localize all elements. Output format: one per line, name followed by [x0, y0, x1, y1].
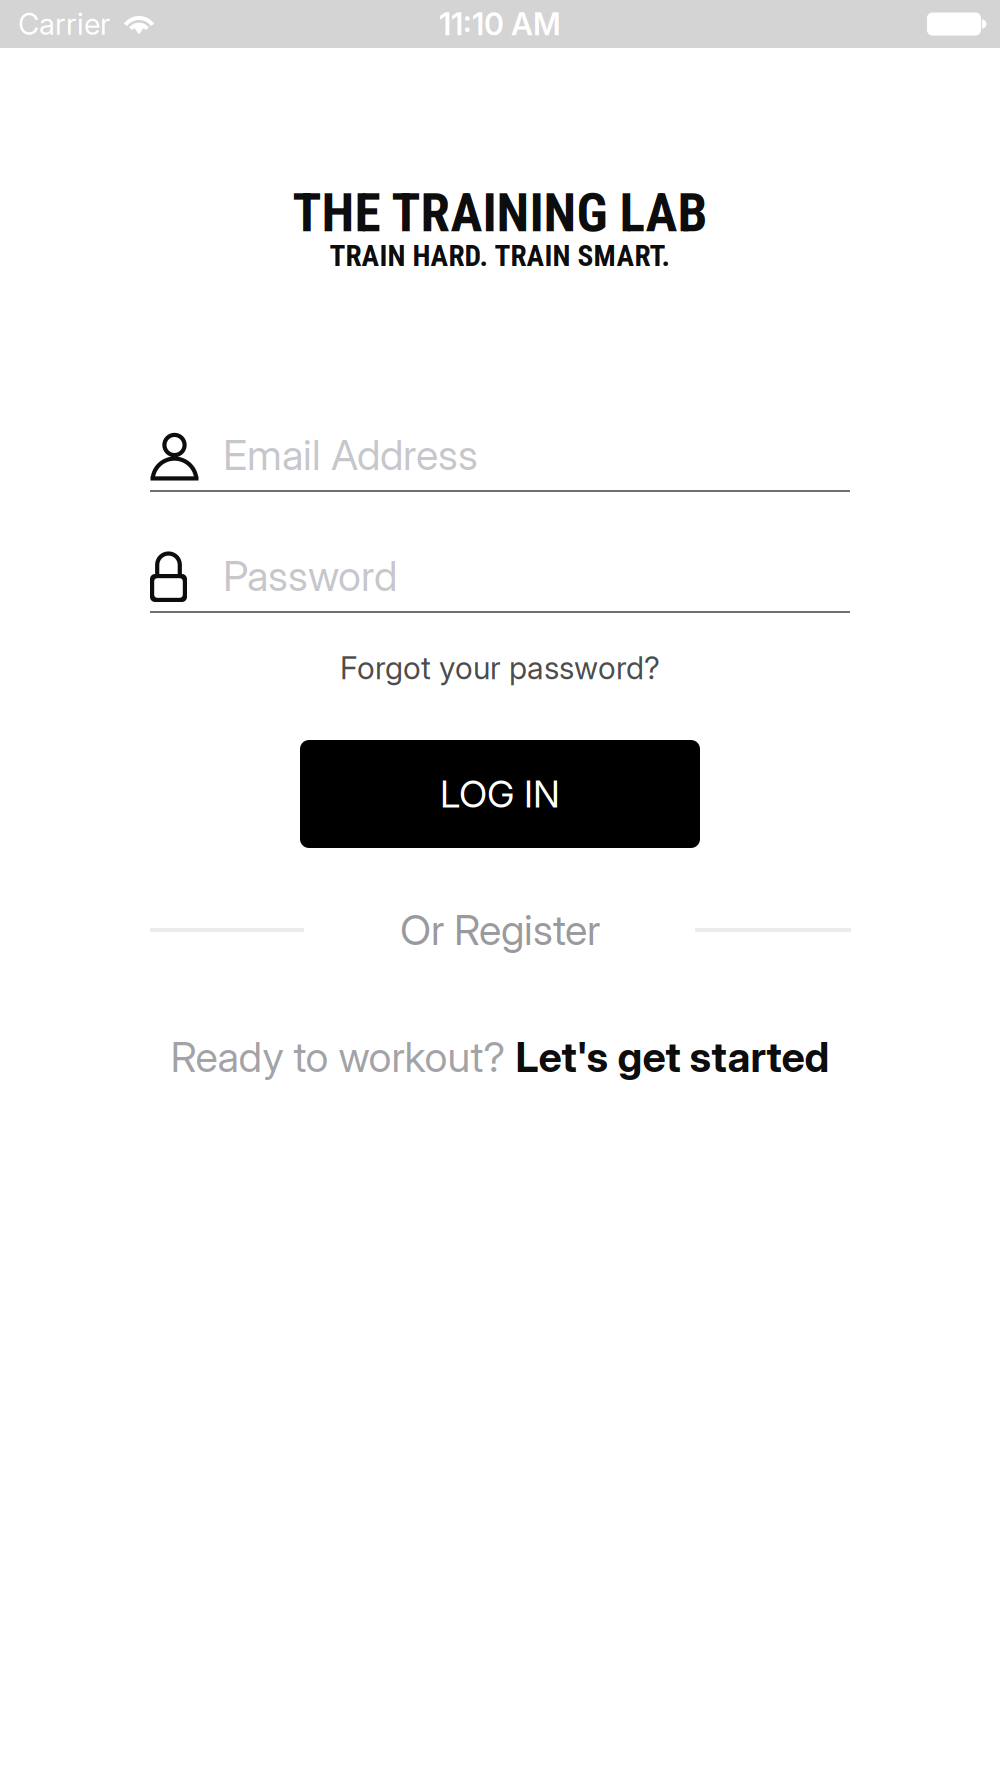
staticText: 11:10 AM: [439, 5, 561, 42]
staticText: Forgot your password?: [340, 649, 660, 686]
staticText: TRAIN HARD. TRAIN SMART.: [329, 239, 670, 273]
staticText: Let's get started: [515, 1032, 829, 1082]
staticText: Or Register: [400, 905, 600, 955]
staticText: Carrier: [18, 6, 110, 42]
staticText: Email Address: [223, 430, 478, 480]
staticText: Password: [223, 551, 397, 601]
staticText: THE TRAINING LAB: [292, 182, 707, 244]
button[interactable]: LOG IN: [300, 740, 700, 848]
staticText: LOG IN: [440, 771, 560, 817]
button[interactable]: Ready to workout?: [150, 1031, 850, 1083]
staticText: Ready to workout?: [170, 1032, 515, 1082]
button[interactable]: Forgot your password?: [300, 640, 700, 696]
